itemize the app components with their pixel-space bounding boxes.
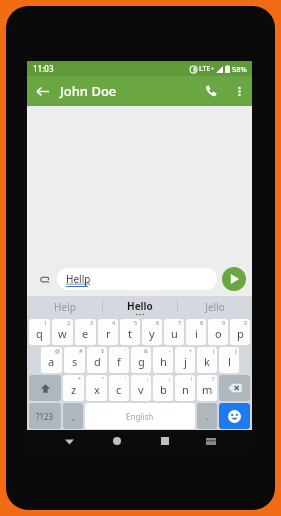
button[interactable]: Keyboard layout <box>201 431 221 451</box>
staticText: : <box>147 375 149 382</box>
button[interactable]: Hello <box>127 299 153 313</box>
button[interactable]: b <box>153 375 173 401</box>
staticText: h <box>160 354 167 369</box>
staticText: d <box>94 354 101 369</box>
staticText: c <box>116 382 122 397</box>
staticText: @ <box>55 347 60 354</box>
button[interactable]: s <box>64 347 85 373</box>
staticText: $ <box>101 347 105 354</box>
staticText: 2 <box>67 319 71 326</box>
staticText: v <box>138 382 144 397</box>
staticText: y <box>149 326 155 341</box>
staticText: + <box>189 347 193 354</box>
staticText: i <box>195 326 198 341</box>
staticText: , <box>72 410 75 422</box>
button[interactable]: English <box>85 403 195 429</box>
staticText: j <box>184 354 187 369</box>
staticText: ?123 <box>36 411 54 422</box>
staticText: w <box>58 326 67 341</box>
staticText: * <box>78 375 82 382</box>
button[interactable]: d <box>87 347 107 373</box>
button[interactable]: c <box>109 375 129 401</box>
button[interactable]: More options <box>226 78 252 104</box>
button[interactable]: i <box>186 319 206 345</box>
staticText: b <box>160 382 167 397</box>
staticText: m <box>202 382 213 397</box>
button[interactable]: t <box>120 319 140 345</box>
staticText: ` <box>125 347 127 354</box>
staticText: t <box>128 326 132 341</box>
button[interactable]: Home <box>107 431 127 451</box>
button[interactable]: Jello <box>178 296 252 318</box>
button[interactable]: p <box>230 319 250 345</box>
staticText: 58% <box>232 64 247 74</box>
staticText: 8 <box>200 319 204 326</box>
button[interactable]: w <box>52 319 73 345</box>
staticText: q <box>36 326 43 341</box>
staticText: # <box>79 347 83 354</box>
staticText: 1 <box>44 319 48 326</box>
button[interactable]: g <box>131 347 151 373</box>
staticText: + <box>211 66 214 73</box>
button[interactable]: a <box>41 347 62 373</box>
staticText: 11:03 <box>33 63 54 74</box>
staticText: 7 <box>178 319 182 326</box>
button[interactable]: Help <box>27 296 102 318</box>
staticText: John Doe <box>60 82 196 100</box>
button[interactable]: f <box>109 347 129 373</box>
button[interactable]: l <box>219 347 239 373</box>
button[interactable]: Call <box>196 76 226 106</box>
button[interactable]: n <box>175 375 195 401</box>
button[interactable]: Recent apps <box>155 431 175 451</box>
staticText: n <box>182 382 189 397</box>
button[interactable]: Shift <box>29 375 61 401</box>
staticText: f <box>117 354 121 369</box>
button[interactable]: e <box>75 319 96 345</box>
button[interactable]: y <box>142 319 162 345</box>
staticText: 9 <box>222 319 226 326</box>
staticText: & <box>144 347 149 354</box>
button[interactable]: k <box>197 347 217 373</box>
button[interactable]: q <box>29 319 50 345</box>
staticText: k <box>204 354 210 369</box>
staticText: u <box>171 326 178 341</box>
staticText: Help <box>54 300 76 314</box>
button[interactable]: j <box>175 347 195 373</box>
staticText: 6 <box>156 319 160 326</box>
staticText: ) <box>235 347 237 354</box>
button[interactable]: v <box>131 375 151 401</box>
button[interactable]: Back <box>59 431 79 451</box>
staticText: 5 <box>134 319 138 326</box>
button[interactable]: x <box>86 375 107 401</box>
staticText: 0 <box>244 319 248 326</box>
staticText: LTE <box>199 64 211 74</box>
button[interactable]: . <box>197 403 217 429</box>
button[interactable]: Backspace <box>219 375 250 401</box>
button[interactable]: Attach <box>33 268 55 290</box>
staticText: 4 <box>112 319 116 326</box>
button[interactable]: ?123 <box>29 403 61 429</box>
staticText: . <box>206 410 209 422</box>
staticText: l <box>228 354 231 369</box>
button[interactable]: h <box>153 347 173 373</box>
staticText: a <box>48 354 55 369</box>
button[interactable]: Send <box>222 267 246 291</box>
staticText: p <box>237 326 244 341</box>
staticText: " <box>102 375 105 382</box>
staticText: e <box>82 326 89 341</box>
staticText: ? <box>212 375 215 382</box>
button[interactable]: r <box>98 319 118 345</box>
button[interactable]: o <box>208 319 228 345</box>
button[interactable]: Emoji <box>219 403 250 429</box>
staticText: g <box>138 354 145 369</box>
staticText: r <box>106 326 111 341</box>
button[interactable]: u <box>164 319 184 345</box>
button[interactable]: , <box>63 403 83 429</box>
button[interactable]: Hellp <box>57 268 217 290</box>
staticText: 3 <box>90 319 94 326</box>
button[interactable]: Back <box>27 76 57 106</box>
button[interactable]: z <box>63 375 84 401</box>
button[interactable]: m <box>197 375 217 401</box>
staticText: ! <box>191 375 193 382</box>
staticText: Hellp <box>66 272 91 286</box>
